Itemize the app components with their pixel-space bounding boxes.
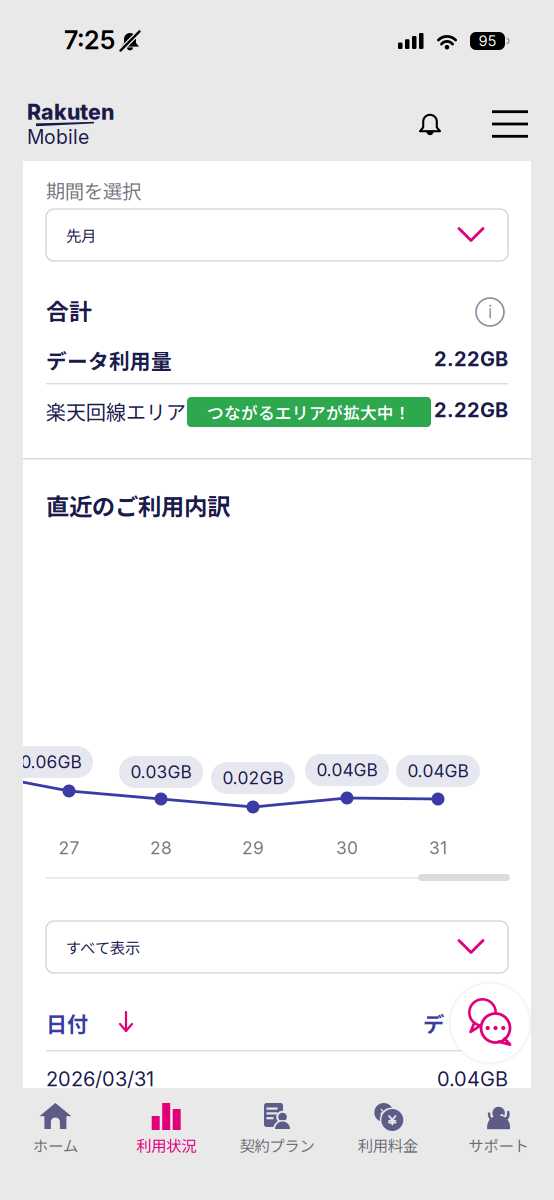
staticText: 27 <box>58 837 79 858</box>
staticText: デ <box>423 1008 444 1038</box>
staticText: 合計 <box>46 294 92 326</box>
staticText: 29 <box>242 837 264 858</box>
staticText: 0.06GB <box>20 751 81 772</box>
button[interactable]: Chat support <box>449 982 531 1064</box>
staticText: 0.04GB <box>407 760 468 781</box>
staticText: Rakuten <box>27 99 114 125</box>
staticText: 契約プラン <box>239 1134 314 1156</box>
button[interactable]: 先月 <box>46 209 508 261</box>
staticText: i <box>488 301 492 322</box>
staticText: 楽天回線エリア <box>46 396 186 425</box>
staticText: 28 <box>150 837 172 858</box>
staticText: 日付 <box>46 1008 88 1038</box>
button[interactable]: ホーム <box>0 1088 111 1200</box>
staticText: 30 <box>336 837 358 858</box>
staticText: Mobile <box>27 125 89 149</box>
staticText: サポート <box>469 1134 529 1156</box>
button[interactable]: 利用状況 <box>111 1088 222 1200</box>
staticText: 期間を選択 <box>46 176 141 204</box>
staticText: つながるエリアが拡大中！ <box>207 400 411 424</box>
staticText: ホーム <box>33 1134 78 1156</box>
button[interactable]: すべて表示 <box>46 921 508 973</box>
button[interactable]: 契約プラン <box>222 1088 332 1200</box>
staticText: 0.04GB <box>437 1067 508 1091</box>
staticText: 利用料金 <box>358 1134 418 1156</box>
button[interactable]: サポート <box>443 1088 554 1200</box>
button[interactable]: 利用料金 <box>332 1088 443 1200</box>
staticText: 0.02GB <box>222 767 283 788</box>
staticText: 先月 <box>66 224 96 246</box>
staticText: 2026/03/31 <box>46 1067 154 1091</box>
staticText: 95 <box>478 32 496 50</box>
staticText: 2.22GB <box>434 398 508 422</box>
staticText: すべて表示 <box>66 936 140 958</box>
staticText: 0.04GB <box>316 759 377 780</box>
button[interactable]: Menu <box>482 96 538 152</box>
staticText: データ利用量 <box>46 345 172 375</box>
staticText: 0.03GB <box>130 761 191 782</box>
staticText: 7:25 <box>64 25 115 55</box>
staticText: 31 <box>429 837 447 858</box>
button[interactable]: Information <box>473 295 507 329</box>
button[interactable]: Notifications <box>402 96 458 152</box>
staticText: 利用状況 <box>136 1134 196 1156</box>
staticText: 直近のご利用内訳 <box>46 488 230 522</box>
staticText: 2.22GB <box>434 347 508 371</box>
